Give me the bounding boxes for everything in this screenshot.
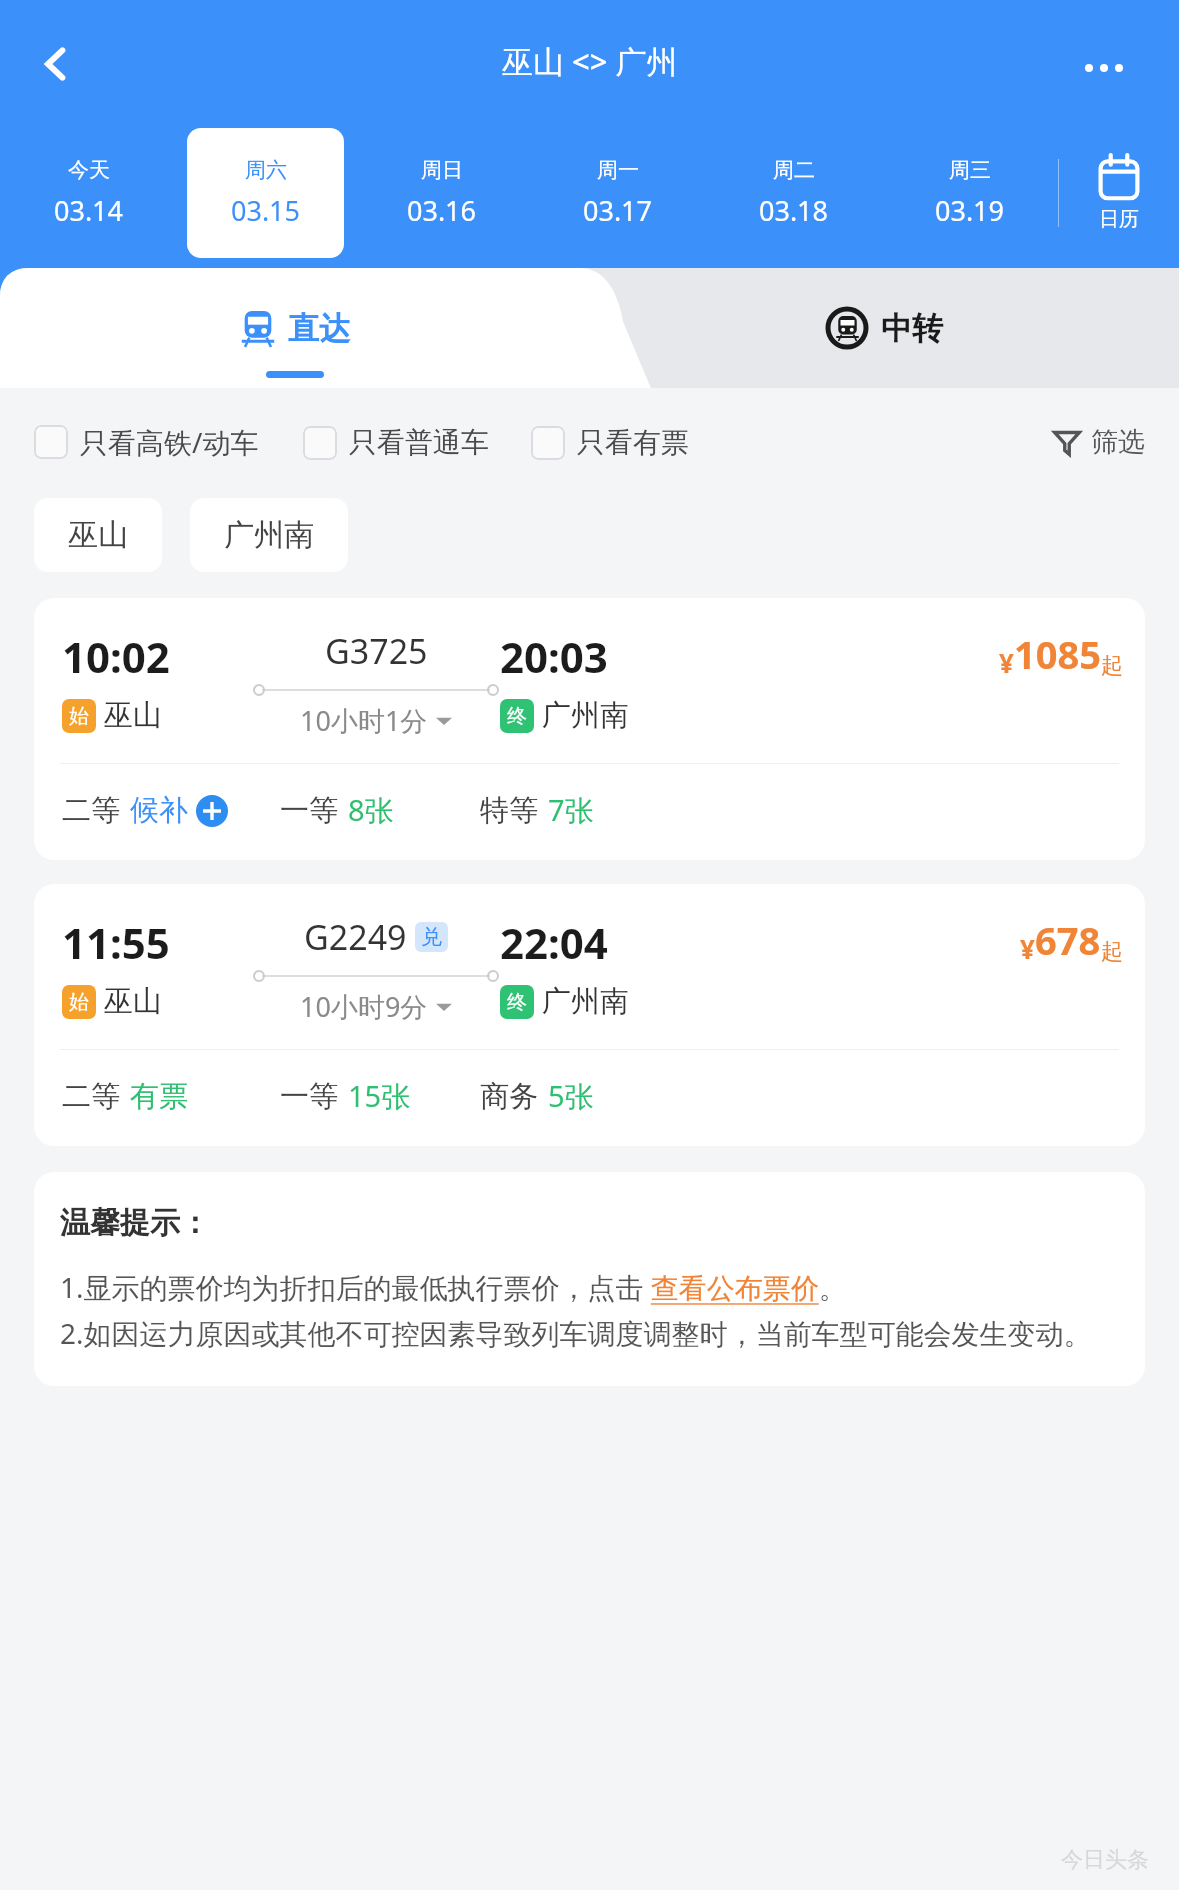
staticText: 筛选 xyxy=(1091,425,1145,459)
staticText: 20:03 xyxy=(500,628,608,685)
staticText: 今天 xyxy=(68,157,110,183)
button[interactable]: Back xyxy=(28,36,84,92)
staticText: 今日头条 xyxy=(1061,1846,1149,1874)
button[interactable]: 周六 xyxy=(187,128,344,258)
staticText: 7张 xyxy=(548,790,594,830)
button[interactable]: 周一 xyxy=(540,128,696,258)
staticText: 10小时9分 xyxy=(300,988,428,1025)
button[interactable]: 只看普通车 xyxy=(303,425,489,460)
staticText: 巫山 xyxy=(68,516,128,554)
staticText: 商务 xyxy=(480,1078,538,1115)
staticText: 5张 xyxy=(548,1076,594,1116)
button[interactable]: 周日 xyxy=(364,128,520,258)
staticText: 一等 xyxy=(280,792,338,829)
staticText: 周日 xyxy=(421,157,463,183)
staticText: 起 xyxy=(1101,938,1123,966)
staticText: 巫山 xyxy=(104,983,162,1020)
staticText: 1085 xyxy=(1014,628,1101,680)
button[interactable]: 中转 xyxy=(589,268,1179,388)
staticText: 周一 xyxy=(597,157,639,183)
staticText: 10小时1分 xyxy=(300,702,428,739)
button[interactable]: 周二 xyxy=(716,128,872,258)
staticText: 始 xyxy=(69,704,89,729)
button[interactable]: 10:02 xyxy=(34,598,1145,860)
staticText: 温馨提示： xyxy=(60,1204,210,1242)
button[interactable]: More options xyxy=(1085,48,1149,88)
staticText: 二等 xyxy=(62,1078,120,1115)
staticText: 始 xyxy=(69,990,89,1015)
staticText: 03.19 xyxy=(935,192,1005,229)
button[interactable]: 周三 xyxy=(892,128,1048,258)
button[interactable]: 巫山 xyxy=(34,498,162,572)
staticText: 只看有票 xyxy=(577,425,689,460)
staticText: 终 xyxy=(507,990,527,1015)
button[interactable]: 只看有票 xyxy=(531,425,689,460)
button[interactable]: 广州南 xyxy=(190,498,348,572)
staticText: 广州南 xyxy=(542,697,629,734)
staticText: 03.16 xyxy=(407,192,477,229)
staticText: 广州南 xyxy=(542,983,629,1020)
staticText: 有票 xyxy=(130,1078,188,1115)
button[interactable]: 只看高铁/动车 xyxy=(34,423,259,461)
staticText: 只看普通车 xyxy=(349,425,489,460)
staticText: 起 xyxy=(1101,652,1123,680)
staticText: 兑 xyxy=(421,924,442,950)
staticText: G2249 xyxy=(304,914,407,960)
staticText: ¥ xyxy=(1020,931,1035,966)
staticText: 03.17 xyxy=(583,192,653,229)
staticText: 候补 xyxy=(130,792,188,829)
button[interactable]: 11:55 xyxy=(34,884,1145,1146)
staticText: 直达 xyxy=(288,309,350,348)
staticText: G3725 xyxy=(325,628,428,674)
staticText: 二等 xyxy=(62,792,120,829)
staticText: 日历 xyxy=(1099,207,1139,232)
button[interactable]: 筛选 xyxy=(1053,425,1145,459)
staticText: 特等 xyxy=(480,792,538,829)
staticText: 周六 xyxy=(245,157,287,183)
staticText: 678 xyxy=(1035,914,1101,966)
staticText: ¥ xyxy=(999,645,1014,680)
staticText: 只看高铁/动车 xyxy=(80,423,259,461)
staticText: 一等 xyxy=(280,1078,338,1115)
staticText: 10:02 xyxy=(62,628,170,685)
button[interactable]: Calendar xyxy=(1059,118,1179,268)
staticText: 周三 xyxy=(949,157,991,183)
staticText: 03.14 xyxy=(54,192,124,229)
staticText: 03.15 xyxy=(231,192,301,229)
staticText: 03.18 xyxy=(759,192,829,229)
staticText: 22:04 xyxy=(500,914,608,971)
staticText: 周二 xyxy=(773,157,815,183)
staticText: 15张 xyxy=(348,1076,411,1116)
staticText: 广州南 xyxy=(224,516,314,554)
staticText: 中转 xyxy=(881,309,943,348)
button[interactable]: 直达 xyxy=(0,268,589,388)
staticText: 2.如因运力原因或其他不可控因素导致列车调度调整时，当前车型可能会发生变动。 xyxy=(60,1314,1092,1352)
staticText: 巫山 <> 广州 xyxy=(502,40,678,82)
button[interactable]: 今天 xyxy=(10,128,167,258)
staticText: 11:55 xyxy=(62,914,170,971)
staticText: 终 xyxy=(507,704,527,729)
staticText: 8张 xyxy=(348,790,394,830)
staticText: 巫山 xyxy=(104,697,162,734)
staticText: 1.显示的票价均为折扣后的最低执行票价，点击 查看公布票价。 xyxy=(60,1268,847,1306)
